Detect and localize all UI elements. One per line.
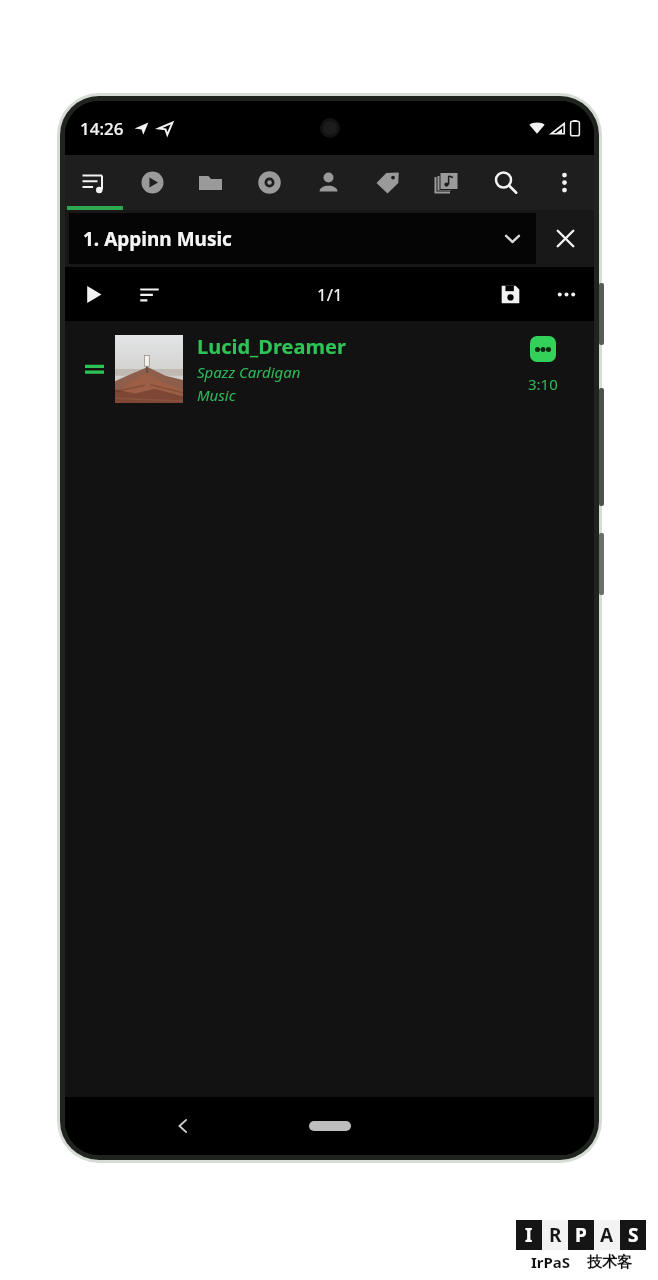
button[interactable]: Sort: [121, 267, 177, 321]
staticText: 3:10: [528, 374, 558, 394]
button[interactable]: Back: [133, 1097, 233, 1155]
button[interactable]: Now playing: [123, 155, 181, 210]
staticText: A: [600, 1222, 614, 1248]
button[interactable]: Close: [536, 210, 594, 267]
button[interactable]: Library: [417, 155, 476, 210]
staticText: 14:26: [80, 117, 124, 140]
button[interactable]: Search: [476, 155, 535, 210]
button[interactable]: Play: [65, 267, 121, 321]
button[interactable]: More options: [535, 155, 594, 210]
staticText: I: [525, 1222, 533, 1248]
button[interactable]: 1. Appinn Music: [69, 213, 536, 264]
button[interactable]: Reorder: [65, 321, 594, 417]
button[interactable]: Save: [482, 267, 538, 321]
staticText: IrPaS: [531, 1252, 571, 1272]
button[interactable]: Genres: [358, 155, 417, 210]
button[interactable]: Reorder: [73, 321, 115, 417]
staticText: 1. Appinn Music: [83, 226, 232, 252]
button[interactable]: Albums: [240, 155, 299, 210]
staticText: Lucid_Dreamer: [197, 333, 346, 360]
staticText: 1/1: [317, 283, 343, 306]
button[interactable]: Home: [270, 1097, 390, 1155]
staticText: Music: [197, 385, 236, 405]
staticText: Spazz Cardigan: [197, 362, 301, 382]
button[interactable]: Playlist: [65, 155, 123, 210]
button[interactable]: More options: [538, 267, 594, 321]
button[interactable]: Track options: [530, 336, 556, 362]
staticText: S: [628, 1222, 639, 1248]
button[interactable]: Artists: [299, 155, 358, 210]
staticText: P: [575, 1222, 587, 1248]
staticText: R: [549, 1222, 562, 1248]
staticText: 技术客: [587, 1253, 632, 1272]
button[interactable]: Folders: [181, 155, 240, 210]
